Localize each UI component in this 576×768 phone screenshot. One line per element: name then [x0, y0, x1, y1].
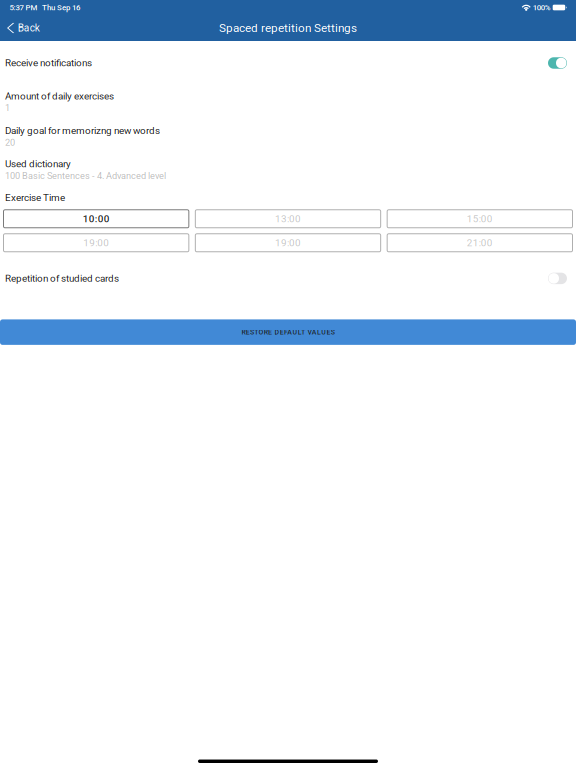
button[interactable]: 10:00: [3, 210, 189, 228]
staticText: RESTORE DEFAULT VALUES: [241, 328, 335, 336]
staticText: Daily goal for memorizng new words: [5, 125, 160, 136]
staticText: 5:37 PM: [9, 3, 37, 12]
button[interactable]: Back: [0, 17, 48, 39]
button[interactable]: 15:00: [387, 210, 572, 228]
staticText: Exercise Time: [5, 192, 65, 203]
button[interactable]: Repetition of studied cards: [0, 267, 576, 289]
button[interactable]: 19:00: [3, 234, 189, 252]
staticText: Used dictionary: [5, 158, 71, 170]
staticText: Receive notifications: [5, 57, 92, 69]
staticText: Repetition of studied cards: [5, 273, 119, 284]
staticText: 13:00: [275, 213, 301, 225]
staticText: 10:00: [83, 213, 110, 225]
staticText: 19:00: [83, 237, 109, 249]
staticText: Thu Sep 16: [42, 3, 80, 12]
staticText: 100%: [533, 3, 551, 12]
staticText: Back: [18, 22, 40, 34]
staticText: Spaced repetition Settings: [219, 21, 357, 35]
staticText: 21:00: [467, 237, 493, 249]
button[interactable]: Daily goal for memorizng new words: [0, 125, 576, 148]
button[interactable]: 21:00: [387, 234, 572, 252]
staticText: 19:00: [275, 237, 301, 249]
staticText: 15:00: [467, 213, 493, 225]
button[interactable]: 13:00: [195, 210, 381, 228]
staticText: 100 Basic Sentences - 4. Advanced level: [5, 170, 166, 181]
button[interactable]: Receive notifications: [0, 52, 576, 74]
staticText: 20: [5, 137, 15, 148]
staticText: 1: [5, 102, 10, 113]
button[interactable]: RESTORE DEFAULT VALUES: [0, 319, 576, 345]
button[interactable]: Amount of daily exercises: [0, 90, 576, 113]
staticText: Amount of daily exercises: [5, 90, 114, 102]
button[interactable]: Used dictionary: [0, 158, 576, 181]
button[interactable]: 19:00: [195, 234, 381, 252]
